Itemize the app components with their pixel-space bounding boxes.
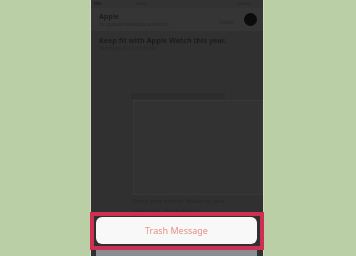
button[interactable]: Contact avatar bbox=[244, 13, 257, 26]
staticText: Apple bbox=[99, 12, 119, 22]
staticText: Keep fit with Apple Watch this year. bbox=[99, 35, 226, 45]
button[interactable]: Trash Message bbox=[96, 217, 257, 244]
button[interactable] bbox=[91, 8, 263, 31]
staticText: Trash Message bbox=[145, 224, 208, 236]
staticText: To: apple@insideapple.apple.com bbox=[99, 21, 170, 27]
staticText: own rules. Think fitness. bbox=[133, 207, 201, 215]
